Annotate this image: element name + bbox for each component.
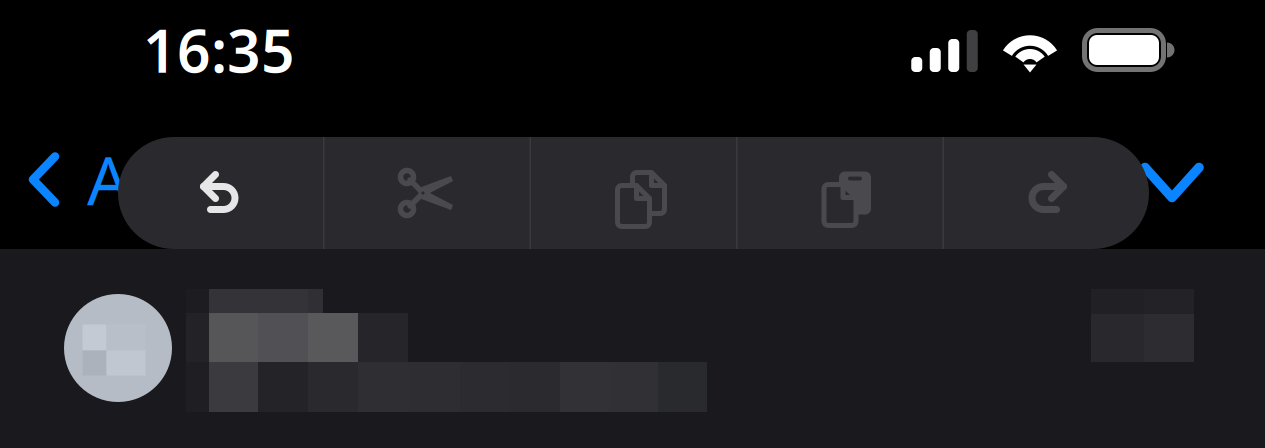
button[interactable]: Redo (944, 137, 1149, 249)
staticText: Accounts (87, 135, 372, 224)
button[interactable]: Accounts (0, 110, 372, 249)
button[interactable]: Paste (737, 137, 942, 249)
button[interactable]: Copy (531, 137, 736, 249)
button[interactable]: Cut (324, 137, 529, 249)
button[interactable]: Undo (118, 137, 323, 249)
button[interactable]: Hide keyboard (1140, 110, 1265, 249)
staticText: 16:35 (143, 11, 295, 89)
